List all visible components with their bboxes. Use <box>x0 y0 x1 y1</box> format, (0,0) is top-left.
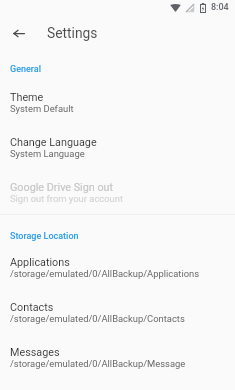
staticText: /storage/emulated/0/AllBackup/Applicatio… <box>10 268 200 279</box>
staticText: 8:04 <box>211 2 229 13</box>
staticText: Theme <box>10 91 44 104</box>
staticText: /storage/emulated/0/AllBackup/Contacts <box>10 313 185 324</box>
button[interactable]: Theme <box>0 89 235 134</box>
staticText: Sign out from your account <box>10 193 124 204</box>
staticText: System Language <box>10 148 85 159</box>
staticText: Applications <box>10 256 70 269</box>
button[interactable]: Change Language <box>0 134 235 179</box>
staticText: Storage Location <box>10 231 79 242</box>
staticText: General <box>10 64 42 75</box>
button[interactable]: Applications <box>0 254 235 299</box>
staticText: Contacts <box>10 301 54 314</box>
button[interactable]: Messages <box>0 344 235 389</box>
staticText: Change Language <box>10 136 97 149</box>
staticText: System Default <box>10 103 74 114</box>
button[interactable]: Contacts <box>0 299 235 344</box>
staticText: Messages <box>10 346 60 359</box>
staticText: /storage/emulated/0/AllBackup/Message <box>10 358 186 369</box>
staticText: Settings <box>47 25 98 41</box>
button: Google Drive Sign out <box>0 179 235 224</box>
button[interactable]: Back <box>4 18 34 48</box>
staticText: Google Drive Sign out <box>10 181 114 194</box>
